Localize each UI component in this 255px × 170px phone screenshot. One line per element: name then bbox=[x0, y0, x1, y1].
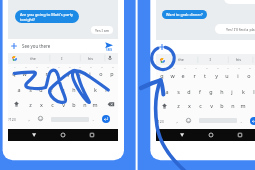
button[interactable]: z bbox=[26, 100, 34, 108]
button[interactable]: l bbox=[250, 87, 255, 95]
button[interactable]: 9 bbox=[246, 64, 254, 72]
button[interactable]: a bbox=[15, 85, 23, 93]
button[interactable]: the bbox=[173, 54, 189, 65]
button[interactable]: 7 bbox=[76, 63, 84, 71]
button[interactable]: ?123 bbox=[8, 115, 16, 123]
button[interactable]: i bbox=[86, 69, 94, 77]
button[interactable]: x bbox=[185, 101, 193, 109]
button[interactable]: 4 bbox=[192, 64, 200, 72]
button[interactable]: o bbox=[97, 69, 105, 77]
button[interactable]: ?123 bbox=[156, 117, 164, 125]
button[interactable]: Yes I am bbox=[91, 26, 113, 34]
button[interactable]: b bbox=[70, 100, 78, 108]
button[interactable]: Voice input bbox=[107, 55, 113, 61]
button[interactable]: u bbox=[223, 71, 231, 79]
button[interactable]: u bbox=[75, 69, 83, 77]
button[interactable]: v bbox=[207, 101, 215, 109]
button[interactable]: f bbox=[48, 85, 56, 93]
button[interactable]: t bbox=[201, 71, 209, 79]
button[interactable]: z bbox=[174, 101, 182, 109]
button[interactable]: q bbox=[158, 71, 166, 79]
button[interactable]: 9 bbox=[98, 63, 106, 71]
button[interactable]: v bbox=[59, 100, 67, 108]
button[interactable]: s bbox=[174, 87, 182, 95]
button[interactable]: I bbox=[202, 54, 218, 65]
button[interactable]: m bbox=[239, 101, 247, 109]
button[interactable]: r bbox=[42, 69, 50, 77]
button[interactable]: c bbox=[196, 101, 204, 109]
button[interactable]: 7 bbox=[224, 64, 232, 72]
button[interactable]: , bbox=[25, 115, 33, 123]
button[interactable]: y bbox=[64, 69, 72, 77]
button[interactable]: d bbox=[37, 85, 45, 93]
button[interactable]: Emoji bbox=[186, 118, 191, 123]
button[interactable]: I bbox=[54, 53, 70, 64]
button[interactable]: Are you going to Matt's party tonight? bbox=[15, 10, 79, 23]
button[interactable]: the bbox=[25, 53, 41, 64]
button[interactable]: i bbox=[234, 71, 242, 79]
button[interactable]: 1 bbox=[11, 63, 19, 71]
button[interactable]: Add bbox=[158, 43, 166, 51]
button[interactable]: Shift bbox=[13, 100, 20, 107]
button[interactable]: 6 bbox=[66, 63, 74, 71]
button[interactable]: x bbox=[37, 100, 45, 108]
button[interactable]: Add bbox=[10, 42, 18, 50]
button[interactable]: . bbox=[89, 115, 97, 123]
button[interactable]: k bbox=[91, 85, 99, 93]
button[interactable]: h bbox=[70, 85, 78, 93]
button[interactable]: Google bbox=[160, 58, 165, 63]
button[interactable]: r bbox=[190, 71, 198, 79]
button[interactable]: c bbox=[48, 100, 56, 108]
button[interactable]: Yes! I'll find a place bbox=[215, 24, 255, 34]
button[interactable]: w bbox=[168, 71, 176, 79]
button[interactable]: e bbox=[179, 71, 187, 79]
button[interactable]: , bbox=[173, 117, 181, 125]
button[interactable]: l bbox=[102, 85, 110, 93]
button[interactable]: Enter bbox=[250, 117, 255, 125]
button[interactable]: e bbox=[31, 69, 39, 77]
button[interactable]: 6 bbox=[214, 64, 222, 72]
button[interactable]: k bbox=[239, 87, 247, 95]
button[interactable]: g bbox=[207, 87, 215, 95]
button[interactable]: Google bbox=[12, 56, 17, 61]
button[interactable]: t bbox=[53, 69, 61, 77]
button[interactable]: g bbox=[59, 85, 67, 93]
button[interactable]: h bbox=[218, 87, 226, 95]
button[interactable]: n bbox=[229, 101, 237, 109]
button[interactable]: 5 bbox=[55, 63, 63, 71]
button[interactable]: Emoji bbox=[38, 116, 43, 121]
button[interactable]: 5 bbox=[203, 64, 211, 72]
button[interactable]: Backspace bbox=[107, 101, 115, 109]
button[interactable]: Enter bbox=[102, 115, 110, 123]
button[interactable]: Send bbox=[104, 41, 114, 51]
button[interactable]: j bbox=[228, 87, 236, 95]
button[interactable]: y bbox=[212, 71, 220, 79]
button[interactable]: 8 bbox=[235, 64, 243, 72]
button[interactable]: 3 bbox=[181, 64, 189, 72]
button[interactable]: n bbox=[81, 100, 89, 108]
button[interactable]: f bbox=[196, 87, 204, 95]
button[interactable]: 3 bbox=[33, 63, 41, 71]
button[interactable]: Want to grab dinner? bbox=[162, 10, 207, 19]
button[interactable]: 8 bbox=[87, 63, 95, 71]
button[interactable]: 2 bbox=[22, 63, 30, 71]
button[interactable]: his bbox=[82, 53, 98, 64]
button[interactable]: his bbox=[230, 54, 246, 65]
button[interactable]: q bbox=[10, 69, 18, 77]
button[interactable]: . bbox=[237, 117, 245, 125]
button[interactable]: o bbox=[245, 71, 253, 79]
button[interactable]: j bbox=[80, 85, 88, 93]
button[interactable]: s bbox=[26, 85, 34, 93]
button[interactable]: b bbox=[218, 101, 226, 109]
button[interactable]: 0 bbox=[109, 63, 117, 71]
button[interactable]: 2 bbox=[170, 64, 178, 72]
button[interactable]: d bbox=[185, 87, 193, 95]
button[interactable]: a bbox=[163, 87, 171, 95]
button[interactable]: m bbox=[91, 100, 99, 108]
button[interactable]: p bbox=[108, 69, 116, 77]
button[interactable]: 1 bbox=[159, 64, 167, 72]
button[interactable]: Shift bbox=[161, 102, 168, 109]
button[interactable]: 4 bbox=[44, 63, 52, 71]
